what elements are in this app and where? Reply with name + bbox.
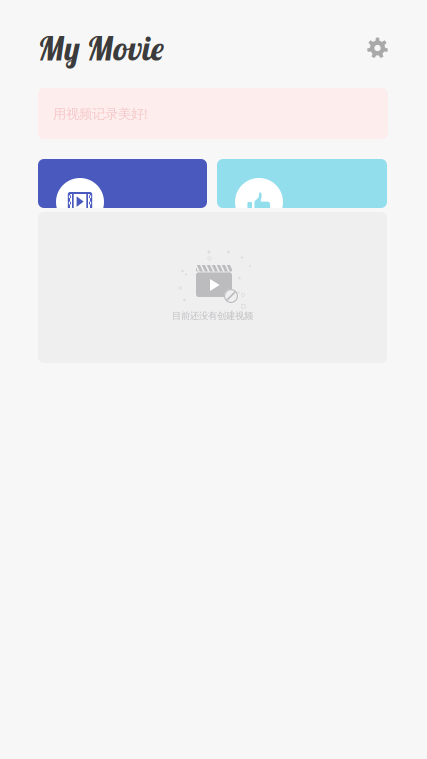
- button[interactable]: Templates: [217, 159, 387, 208]
- staticText: 目前还没有创建视频: [172, 310, 253, 322]
- staticText: 用视频记录美好!: [53, 105, 148, 122]
- staticText: My Movie: [38, 27, 164, 69]
- button[interactable]: Create video: [38, 159, 207, 208]
- button[interactable]: Settings: [360, 30, 395, 65]
